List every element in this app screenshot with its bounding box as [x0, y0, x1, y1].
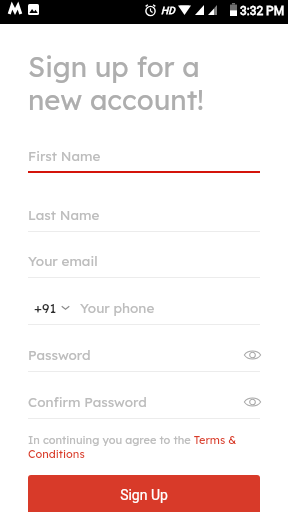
staticText: Your phone — [80, 299, 155, 316]
staticText: Password — [28, 346, 91, 363]
button[interactable]: Last Name — [28, 201, 260, 232]
button[interactable]: Confirm Password — [28, 388, 260, 419]
button[interactable]: Your email — [28, 247, 260, 278]
button[interactable]: First Name — [28, 142, 260, 173]
staticText: Last Name — [28, 206, 100, 223]
staticText: Confirm Password — [28, 393, 147, 410]
staticText: Sign up for a new account! — [28, 49, 204, 117]
staticText: HD — [161, 5, 175, 17]
button[interactable]: Password — [28, 341, 260, 372]
staticText: +91 — [34, 299, 57, 316]
button[interactable]: Show password — [239, 343, 261, 367]
staticText: Your email — [28, 252, 98, 269]
button[interactable]: Select country code — [34, 299, 70, 316]
staticText: First Name — [28, 147, 101, 164]
button[interactable]: In continuing you agree to the Terms & C… — [28, 433, 260, 461]
button[interactable]: Show password — [239, 390, 261, 414]
staticText: 3:32 PM — [240, 4, 285, 18]
staticText: Sign Up — [120, 487, 168, 503]
staticText: In continuing you agree to the Terms & C… — [28, 433, 260, 461]
button[interactable]: Sign Up — [28, 475, 260, 512]
